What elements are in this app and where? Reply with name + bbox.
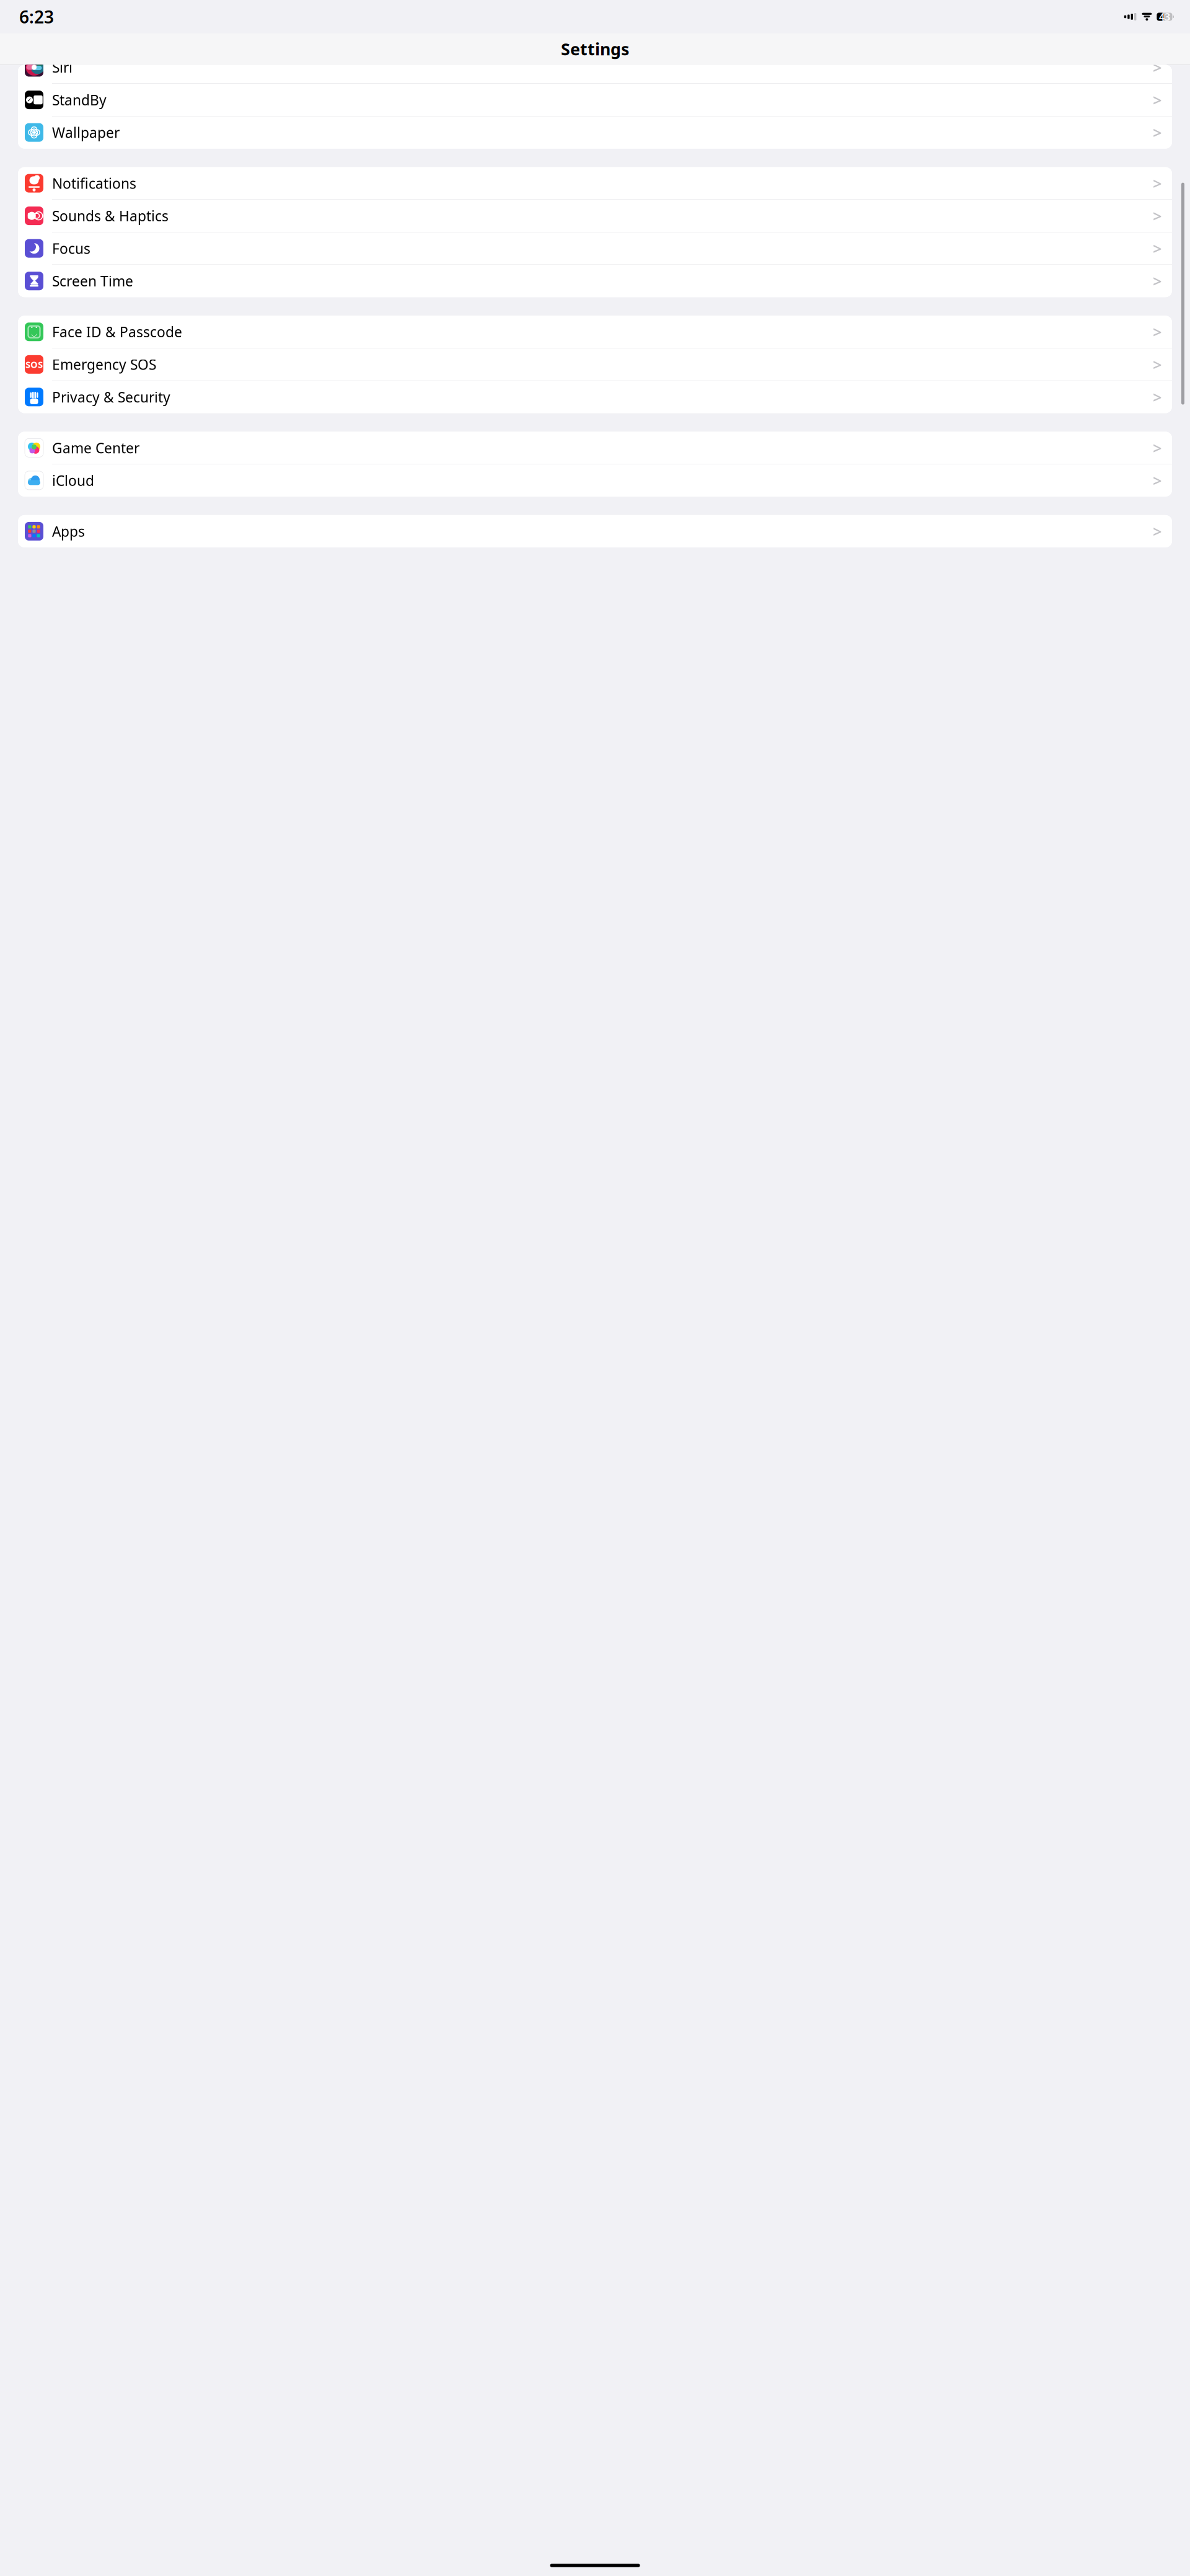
staticText: Siri <box>52 58 73 77</box>
staticText: Game Center <box>52 439 139 457</box>
staticText: > <box>1153 470 1161 491</box>
button[interactable]: ⧗ <box>18 265 1172 297</box>
staticText: > <box>1153 173 1161 194</box>
staticText: 43 <box>1159 10 1170 23</box>
staticText: Sounds & Haptics <box>52 207 169 225</box>
button[interactable]: ✓ <box>18 84 1172 116</box>
staticText: iCloud <box>52 471 94 490</box>
staticText: ⧗ <box>30 275 38 287</box>
staticText: Notifications <box>52 174 136 193</box>
button[interactable]: Notifications <box>18 167 1172 200</box>
staticText: Privacy & Security <box>52 388 170 406</box>
staticText: > <box>1153 238 1161 259</box>
staticText: > <box>1153 521 1161 542</box>
button[interactable]: Siri <box>18 51 1172 84</box>
staticText: > <box>1153 437 1161 458</box>
button[interactable]: iCloud <box>18 464 1172 497</box>
staticText: 6:23 <box>19 5 54 28</box>
staticText: Screen Time <box>52 272 133 290</box>
staticText: Wallpaper <box>52 123 120 142</box>
staticText: Settings <box>561 38 629 60</box>
staticText: Apps <box>52 522 85 541</box>
staticText: > <box>1153 205 1161 226</box>
button[interactable]: Privacy & Security <box>18 381 1172 413</box>
staticText: Face ID & Passcode <box>52 323 182 341</box>
staticText: ◡ <box>32 330 37 337</box>
button[interactable]: ◡ <box>18 316 1172 348</box>
button[interactable]: Apps <box>18 515 1172 547</box>
staticText: > <box>1153 271 1161 291</box>
staticText: > <box>1153 387 1161 407</box>
staticText: Focus <box>52 239 90 258</box>
staticText: > <box>1153 89 1161 110</box>
staticText: > <box>1153 122 1161 143</box>
staticText: Emergency SOS <box>52 355 156 374</box>
button[interactable]: Sounds & Haptics <box>18 200 1172 232</box>
staticText: StandBy <box>52 91 107 109</box>
button[interactable]: SOS <box>18 348 1172 381</box>
staticText: SOS <box>25 358 43 370</box>
button[interactable]: Wallpaper <box>18 116 1172 149</box>
staticText: ✓ <box>27 97 32 103</box>
button[interactable]: Focus <box>18 232 1172 265</box>
staticText: > <box>1153 57 1161 78</box>
button[interactable]: Game Center <box>18 432 1172 464</box>
staticText: > <box>1153 354 1161 375</box>
staticText: > <box>1153 321 1161 342</box>
